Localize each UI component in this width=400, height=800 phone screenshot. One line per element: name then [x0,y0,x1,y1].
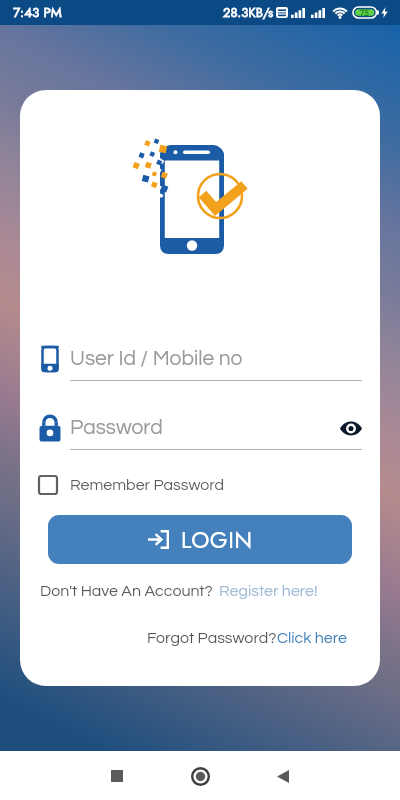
staticText: User Id / Mobile no [70,348,243,370]
button[interactable]: Home [176,752,224,800]
staticText: 75 [360,7,369,18]
staticText: Forgot Password? [147,630,277,646]
button[interactable]: Back [259,752,307,800]
staticText: LOGIN [181,523,253,556]
button[interactable]: Register here! [219,583,318,599]
button[interactable]: Recents [93,752,141,800]
staticText: Click here [277,630,347,646]
button[interactable]: Click here [277,630,347,646]
staticText: Remember Password [70,477,225,493]
staticText: 28.3KB/s [223,3,274,22]
button[interactable]: Remember Password [39,476,225,494]
staticText: Register here! [219,583,318,599]
button[interactable]: Show password [339,417,362,440]
button[interactable]: LOGIN [48,515,352,564]
staticText: Don't Have An Account? [40,583,213,599]
staticText: 7:43 PM [13,3,62,23]
staticText: Password [70,417,163,439]
